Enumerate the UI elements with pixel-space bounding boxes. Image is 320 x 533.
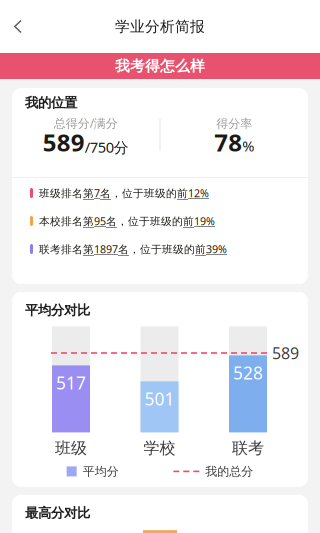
button[interactable]: Back (0, 6, 36, 46)
staticText: 平均分对比 (25, 302, 90, 318)
staticText: 班级 (55, 438, 87, 458)
staticText: 最高分对比 (25, 505, 90, 521)
staticText: 我的总分 (205, 464, 253, 479)
staticText: 589/750分 (43, 126, 129, 158)
staticText: 501 (144, 387, 174, 410)
staticText: 学业分析简报 (115, 17, 205, 35)
staticText: 总得分/满分 (54, 115, 118, 131)
staticText: 78% (214, 126, 254, 158)
staticText: 我的位置 (25, 95, 77, 111)
staticText: 528 (233, 361, 263, 384)
staticText: 我考得怎么样 (115, 57, 205, 75)
staticText: 本校排名第95名，位于班级的前19% (39, 214, 215, 228)
staticText: 学校 (143, 438, 175, 458)
staticText: 589 (272, 342, 299, 364)
staticText: 联考排名第1897名，位于班级的前39% (39, 242, 227, 256)
staticText: 联考 (232, 438, 264, 458)
staticText: 得分率 (216, 116, 252, 131)
staticText: 平均分 (83, 464, 119, 479)
staticText: 517 (56, 371, 86, 394)
staticText: 班级排名第7名，位于班级的前12% (39, 186, 209, 200)
